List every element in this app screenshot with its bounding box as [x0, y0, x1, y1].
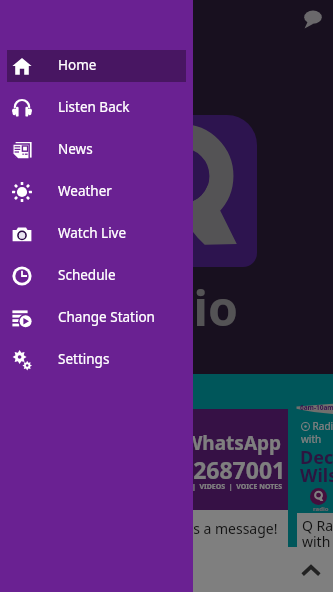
staticText: Schedule	[58, 266, 116, 284]
button[interactable]: News	[7, 134, 186, 166]
button[interactable]: Q Radio	[297, 513, 333, 547]
button[interactable]: Send us a message!	[152, 510, 288, 547]
button[interactable]: Schedule	[7, 260, 186, 292]
staticText: Radio	[310, 419, 333, 433]
staticText: 6am-10am	[300, 403, 333, 412]
staticText: WhatsApp	[184, 430, 282, 456]
button[interactable]: WhatsApp	[152, 409, 288, 510]
staticText: Settings	[58, 350, 110, 368]
staticText: Wilson	[300, 463, 333, 488]
button[interactable]: Listen Back	[7, 92, 186, 124]
staticText: PHOTOS | VIDEOS | VOICE NOTES	[160, 482, 283, 492]
staticText: Change Station	[58, 308, 155, 326]
button[interactable]: Change Station	[7, 302, 186, 334]
button[interactable]: Home	[7, 50, 186, 82]
staticText: Home	[58, 56, 97, 74]
staticText: with ...	[302, 532, 333, 551]
button[interactable]: 6am-10am	[289, 386, 333, 512]
button[interactable]: Scroll up	[298, 558, 324, 584]
button[interactable]: Settings	[7, 344, 186, 376]
staticText: 02687001	[180, 454, 286, 485]
staticText: Weather	[58, 182, 112, 200]
staticText: Listen Back	[58, 98, 130, 116]
staticText: Watch Live	[58, 224, 127, 242]
button[interactable]: Weather	[7, 176, 186, 208]
staticText: with	[301, 432, 322, 446]
staticText: Declan	[300, 445, 333, 470]
button[interactable]: Watch Live	[7, 218, 186, 250]
staticText: Q Radio	[302, 516, 333, 535]
staticText: radio	[114, 275, 238, 340]
button[interactable]: Messages	[303, 9, 323, 29]
staticText: Send us a message!	[148, 519, 278, 538]
staticText: News	[58, 140, 93, 158]
staticText: radio	[313, 505, 329, 513]
